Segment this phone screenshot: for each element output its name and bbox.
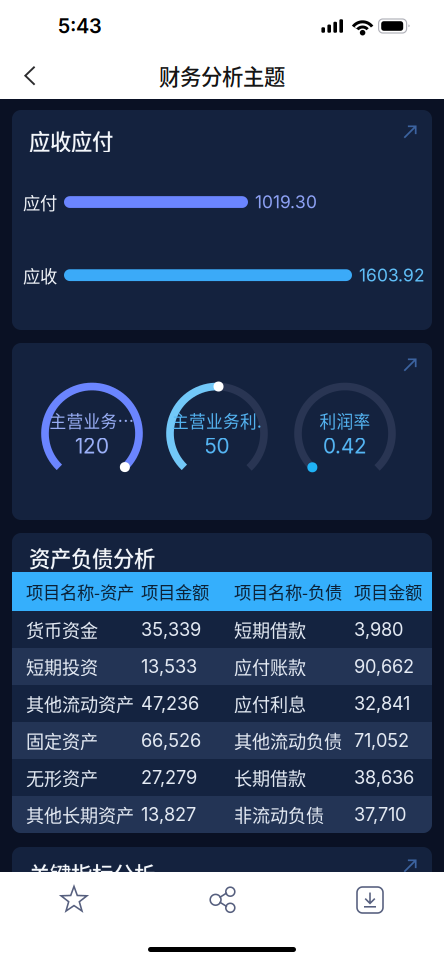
staticText: 1603.92	[359, 265, 425, 286]
staticText: 资产负债分析	[29, 542, 155, 573]
button[interactable]: Expand chart	[394, 349, 426, 381]
staticText: 50	[204, 434, 229, 459]
staticText: 120	[75, 434, 109, 459]
staticText: 应付账款	[234, 653, 306, 680]
staticText: 66,526	[141, 729, 201, 751]
staticText: 主营业务…	[49, 408, 134, 432]
staticText: 其他流动负债	[234, 727, 342, 754]
button[interactable]: Back	[8, 53, 52, 97]
button[interactable]: Expand 应收应付	[394, 116, 426, 148]
button[interactable]: Favorite	[0, 873, 148, 927]
staticText: 90,662	[354, 655, 414, 677]
staticText: 3,980	[354, 618, 403, 640]
staticText: 1019.30	[255, 192, 317, 213]
staticText: 38,636	[354, 766, 414, 788]
staticText: 项目名称-资产	[26, 579, 134, 604]
staticText: 无形资产	[26, 764, 98, 791]
staticText: 32,841	[354, 692, 410, 714]
button[interactable]: Expand 关键指标分析	[394, 850, 426, 882]
staticText: 应收应付	[29, 125, 113, 156]
staticText: 非流动负债	[234, 801, 324, 828]
staticText: 0.42	[323, 434, 367, 459]
staticText: 长期借款	[234, 764, 306, 791]
staticText: 其他长期资产	[26, 801, 134, 828]
staticText: 主营业务利.	[172, 408, 262, 432]
staticText: 应收	[23, 263, 57, 288]
button[interactable]: Share	[148, 873, 296, 927]
staticText: 35,339	[141, 618, 201, 640]
staticText: 货币资金	[26, 616, 98, 643]
button[interactable]: Download	[296, 873, 444, 927]
staticText: 47,236	[141, 692, 199, 714]
staticText: 财务分析主题	[159, 60, 285, 91]
staticText: 关键指标分析	[29, 858, 155, 889]
staticText: 27,279	[141, 766, 197, 788]
staticText: 项目金额	[141, 579, 209, 604]
staticText: 应付	[23, 189, 57, 215]
staticText: 13,533	[141, 655, 197, 677]
staticText: 37,710	[354, 803, 406, 825]
staticText: 5:43	[58, 14, 102, 38]
staticText: 固定资产	[26, 727, 98, 754]
staticText: 应付利息	[234, 690, 306, 717]
staticText: 短期投资	[26, 653, 98, 680]
staticText: 利润率	[319, 408, 370, 432]
staticText: 项目金额	[354, 579, 422, 604]
staticText: 短期借款	[234, 616, 306, 643]
staticText: 项目名称-负债	[234, 579, 342, 604]
staticText: 71,052	[354, 729, 409, 751]
staticText: 其他流动资产	[26, 690, 134, 717]
staticText: 13,827	[141, 803, 196, 825]
